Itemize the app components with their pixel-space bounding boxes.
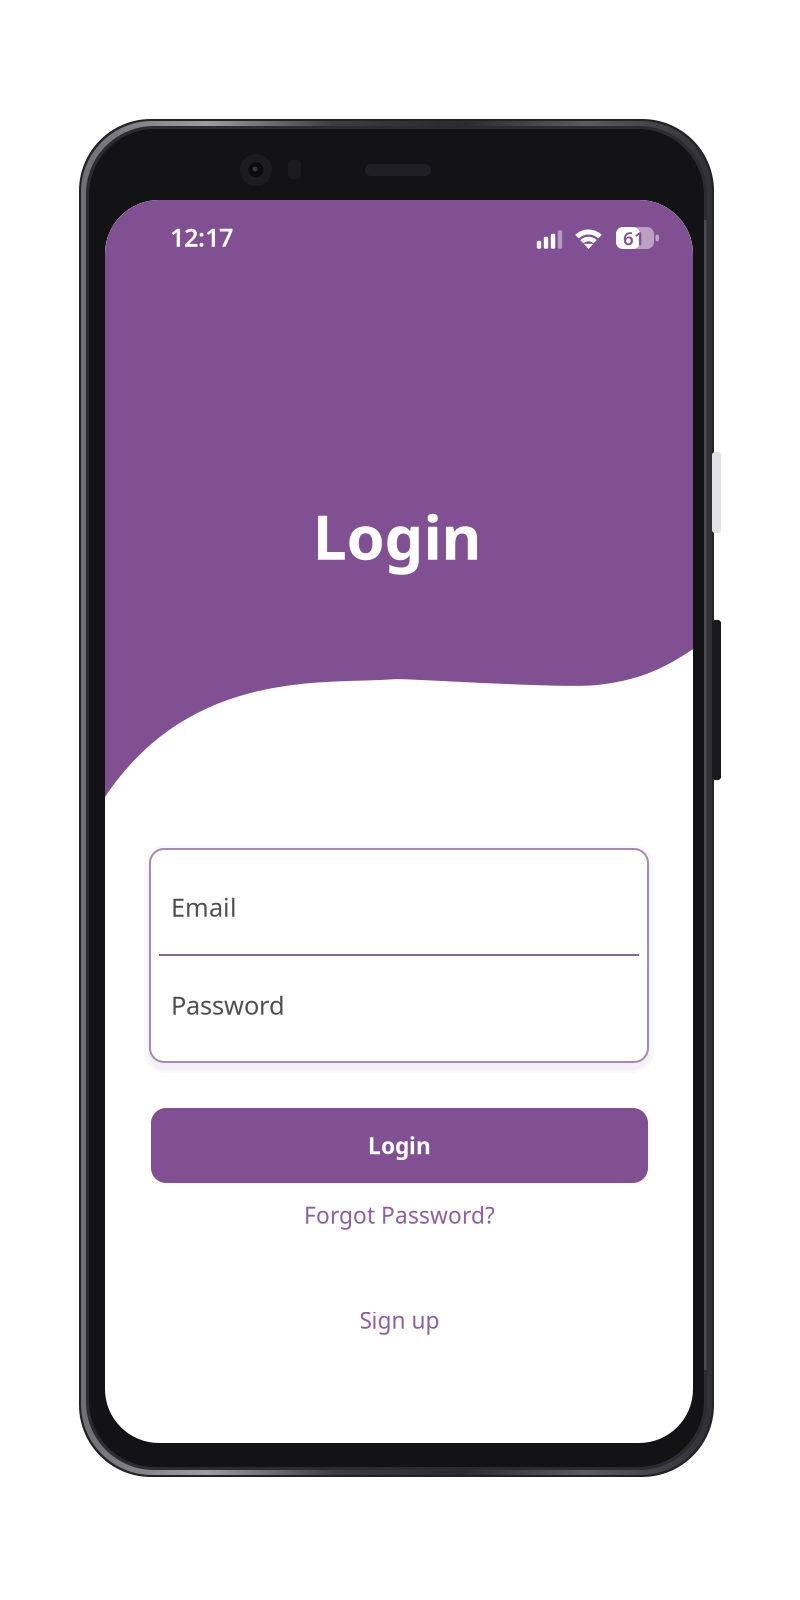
staticText: 61 <box>623 226 645 250</box>
staticText: 12:17 <box>170 220 233 254</box>
button[interactable]: Login <box>151 1108 648 1183</box>
staticText: Email <box>171 890 237 924</box>
button[interactable]: Sign up <box>151 1298 648 1342</box>
button[interactable]: Forgot Password? <box>151 1193 648 1237</box>
staticText: Login <box>312 495 481 577</box>
staticText: Sign up <box>359 1305 439 1335</box>
staticText: Password <box>171 988 285 1022</box>
staticText: Login <box>368 1130 431 1160</box>
staticText: Forgot Password? <box>304 1200 495 1230</box>
